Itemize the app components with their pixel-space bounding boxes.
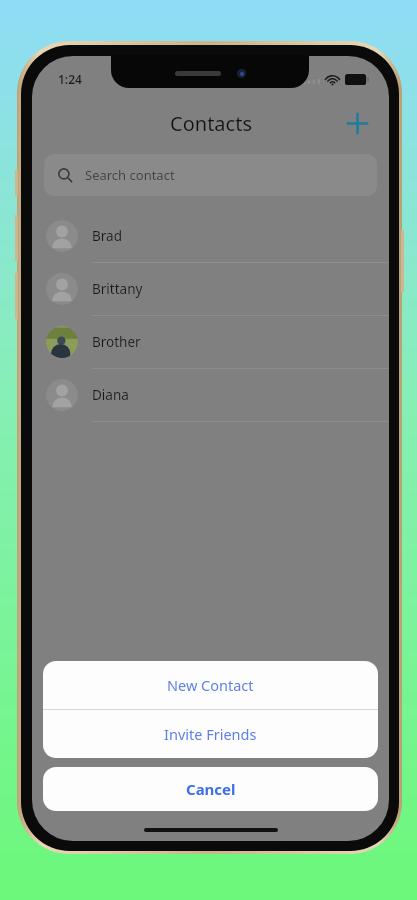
button[interactable]: New Contact (43, 661, 378, 709)
staticText: Brother (92, 333, 141, 351)
button[interactable]: Brittany (32, 263, 389, 316)
button[interactable]: Search contact (44, 154, 377, 196)
button[interactable]: Brother (32, 316, 389, 369)
staticText: Invite Friends (164, 724, 257, 744)
staticText: Diana (92, 386, 129, 404)
button[interactable]: Brad (32, 210, 389, 263)
button[interactable]: Cancel (43, 767, 378, 811)
staticText: 1:24 (58, 71, 82, 87)
button[interactable]: Invite Friends (43, 710, 378, 758)
staticText: Brad (92, 227, 122, 245)
button[interactable]: Diana (32, 369, 389, 422)
staticText: Cancel (186, 779, 236, 799)
staticText: Brittany (92, 280, 143, 298)
staticText: Search contact (85, 166, 175, 184)
staticText: New Contact (167, 675, 254, 695)
button[interactable]: Add contact (337, 103, 377, 143)
staticText: Contacts (170, 110, 252, 137)
